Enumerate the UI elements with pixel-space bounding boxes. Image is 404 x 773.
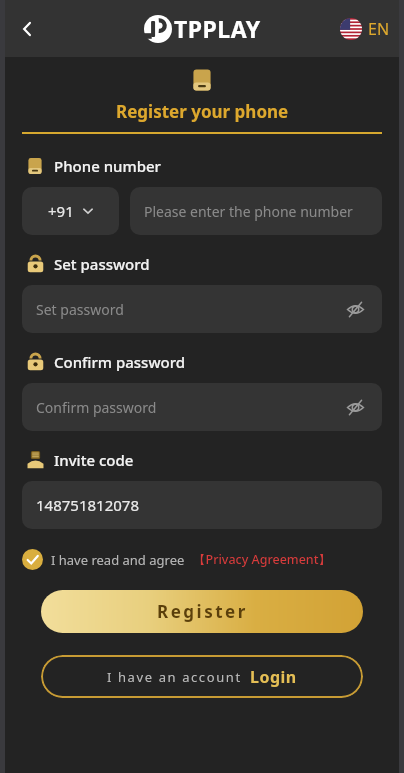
staticText: Confirm password: [36, 398, 157, 417]
button[interactable]: Toggle password visibility: [340, 392, 370, 422]
staticText: Confirm password: [54, 352, 186, 372]
staticText: I have read and agree: [51, 551, 185, 569]
staticText: Register: [157, 600, 248, 623]
staticText: Register your phone: [116, 100, 289, 123]
button[interactable]: +91: [22, 187, 119, 235]
button[interactable]: Back: [10, 12, 44, 46]
staticText: +91: [48, 201, 74, 221]
button[interactable]: I have an account: [41, 655, 363, 698]
staticText: Set password: [54, 254, 150, 274]
staticText: EN: [368, 18, 390, 40]
staticText: Please enter the phone number: [144, 202, 353, 221]
staticText: 【Privacy Agreement】: [193, 551, 331, 568]
staticText: Set password: [36, 300, 124, 319]
staticText: Login: [250, 666, 297, 688]
button[interactable]: Register: [41, 590, 363, 633]
button[interactable]: Confirm password: [22, 383, 382, 431]
button[interactable]: Toggle password visibility: [340, 294, 370, 324]
staticText: 148751812078: [36, 495, 139, 515]
staticText: I have an account: [107, 668, 242, 686]
staticText: TPPLAY: [174, 13, 261, 44]
staticText: Invite code: [54, 450, 134, 470]
button[interactable]: EN: [340, 18, 390, 40]
staticText: Phone number: [54, 156, 161, 176]
button[interactable]: I have read and agree: [22, 549, 382, 570]
button[interactable]: Set password: [22, 285, 382, 333]
button[interactable]: 148751812078: [22, 481, 382, 529]
button[interactable]: Please enter the phone number: [130, 187, 382, 235]
